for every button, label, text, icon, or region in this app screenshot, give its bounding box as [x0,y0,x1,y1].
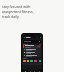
button[interactable]: Menu [22,34,42,72]
button[interactable]: Home [24,70,26,72]
button[interactable]: Profile [39,36,41,38]
button[interactable]: Search [36,36,38,38]
staticText: stay focused with [2,4,31,9]
button[interactable]: Menu [23,36,25,38]
staticText: Tasks [26,36,31,38]
button[interactable] [23,45,41,48]
button[interactable] [39,60,41,62]
button[interactable] [24,51,40,54]
button[interactable]: Settings [38,70,40,72]
button[interactable] [34,60,37,62]
button[interactable] [23,60,26,62]
button[interactable] [24,40,40,43]
button[interactable] [24,54,40,57]
button[interactable] [24,48,40,51]
button[interactable] [30,60,33,62]
staticText: track daily. [2,14,20,19]
button[interactable]: Tasks [29,70,31,72]
staticText: assignment fitness, [2,9,34,14]
button[interactable] [27,60,29,62]
button[interactable]: Stats [33,70,35,72]
